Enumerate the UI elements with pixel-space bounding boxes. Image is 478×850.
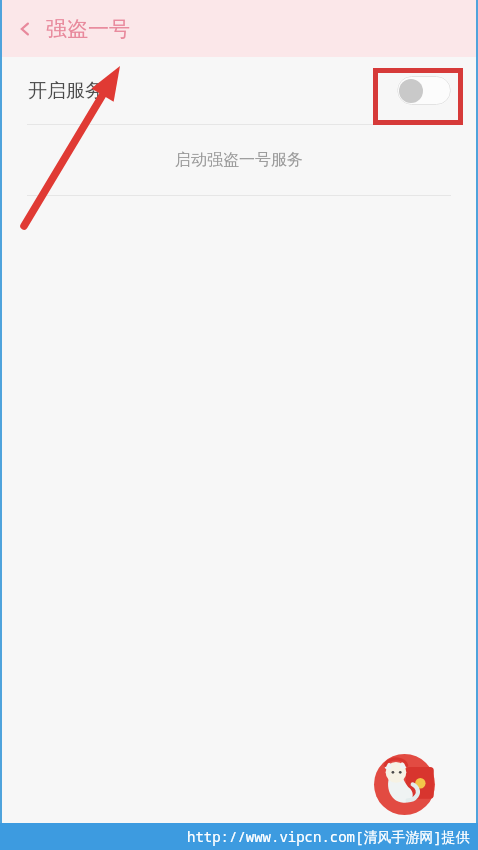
staticText: 强盗一号: [46, 16, 130, 42]
button[interactable]: 开启服务: [2, 57, 476, 124]
button[interactable]: Enable service toggle: [397, 76, 451, 105]
staticText: http://www.vipcn.com[清风手游网]提供: [187, 827, 470, 846]
staticText: 开启服务: [28, 79, 104, 103]
staticText: 启动强盗一号服务: [175, 150, 303, 170]
button[interactable]: Back: [10, 14, 40, 44]
